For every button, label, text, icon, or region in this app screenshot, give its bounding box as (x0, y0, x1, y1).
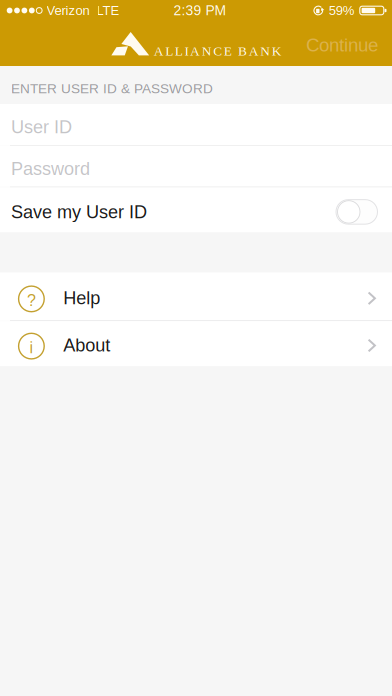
staticText: Verizon (47, 3, 90, 18)
button[interactable]: Save my User ID (0, 187, 392, 232)
button[interactable]: i (0, 321, 392, 366)
staticText: i (29, 339, 33, 357)
staticText: 59% (329, 3, 355, 18)
staticText: Continue (306, 35, 378, 55)
staticText: ALLIANCE BANK (154, 44, 282, 58)
button[interactable]: Continue (292, 21, 392, 65)
button[interactable]: ? (0, 272, 392, 320)
staticText: LTE (97, 3, 120, 18)
staticText: Save my User ID (11, 202, 147, 222)
staticText: About (63, 335, 110, 355)
staticText: Help (63, 288, 100, 308)
staticText: Password (11, 159, 90, 179)
staticText: ENTER USER ID & PASSWORD (11, 81, 213, 96)
staticText: ? (27, 291, 36, 309)
staticText: 2:39 PM (173, 3, 226, 18)
staticText: User ID (11, 117, 72, 137)
